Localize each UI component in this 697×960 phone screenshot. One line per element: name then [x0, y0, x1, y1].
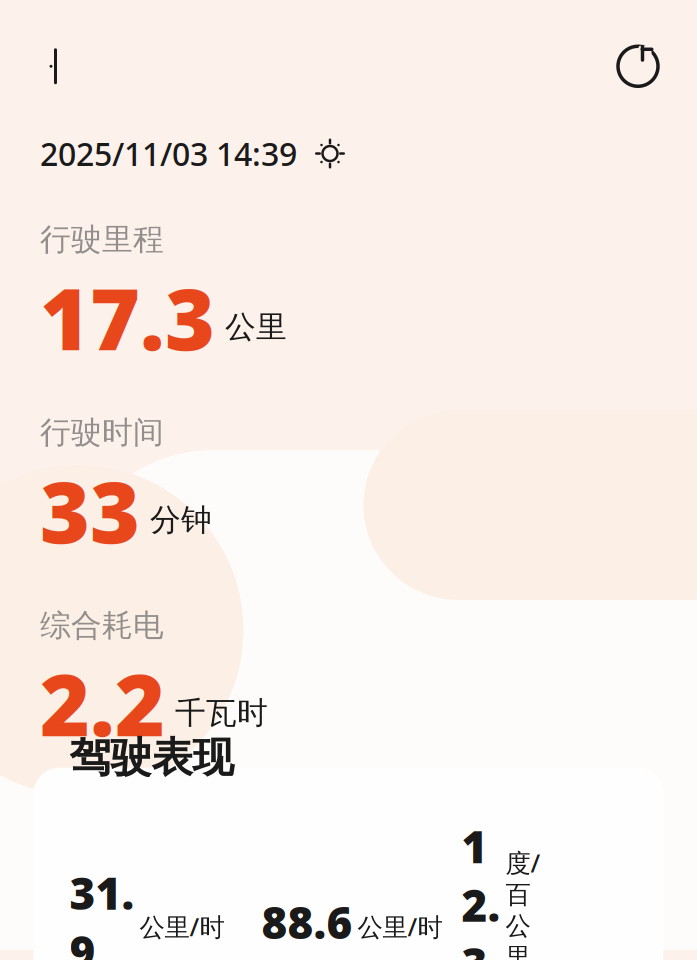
staticText: 千瓦时 [175, 694, 268, 732]
button[interactable]: Back [32, 38, 88, 94]
staticText: 17.3 [40, 260, 215, 374]
staticText: 33 [40, 453, 140, 567]
staticText: 驾驶表现 [69, 732, 233, 783]
staticText: 行驶时间 [40, 414, 164, 451]
staticText: 31.9 [69, 863, 134, 960]
staticText: 公里/时 [139, 910, 224, 943]
staticText: 2025/11/03 14:39 [40, 132, 297, 175]
staticText: 行驶里程 [40, 221, 164, 258]
staticText: 分钟 [150, 501, 212, 539]
staticText: 12.3 [461, 817, 500, 960]
staticText: 公里 [225, 308, 287, 346]
button[interactable]: Share [611, 39, 665, 93]
staticText: 公里/时 [357, 910, 442, 943]
staticText: 度/百公里 [505, 846, 540, 960]
staticText: 综合耗电 [40, 607, 164, 644]
staticText: 2.2 [40, 646, 165, 760]
staticText: 88.6 [261, 893, 352, 951]
